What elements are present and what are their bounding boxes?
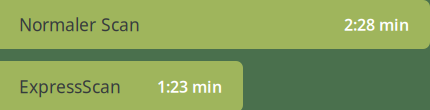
- staticText: 2:28 min: [344, 14, 409, 35]
- staticText: ExpressScan: [19, 75, 121, 98]
- button[interactable]: ExpressScan: [0, 61, 243, 110]
- button[interactable]: Normaler Scan: [0, 0, 430, 49]
- staticText: 1:23 min: [157, 76, 222, 97]
- staticText: Normaler Scan: [19, 13, 140, 36]
